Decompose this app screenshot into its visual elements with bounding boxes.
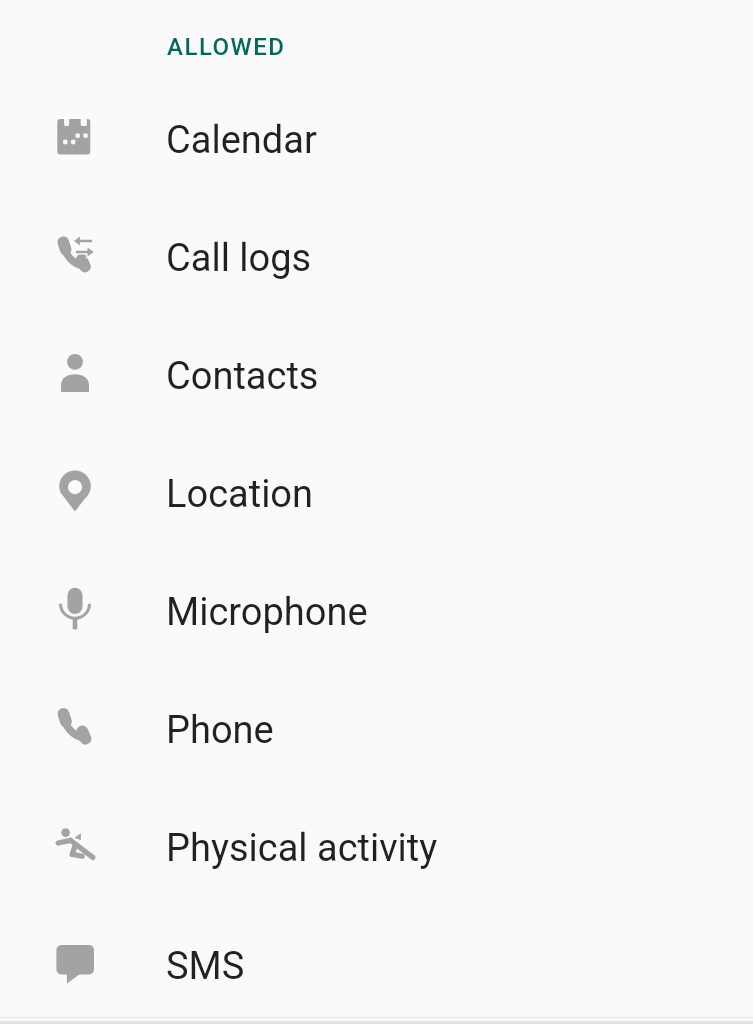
button[interactable]: Calendar: [0, 81, 753, 199]
staticText: Location: [166, 472, 314, 517]
button[interactable]: Location: [0, 435, 753, 553]
staticText: Phone: [166, 708, 274, 753]
button[interactable]: Microphone: [0, 553, 753, 671]
button[interactable]: Physical activity: [0, 789, 753, 907]
staticText: ALLOWED: [167, 33, 286, 61]
staticText: Contacts: [166, 354, 319, 399]
button[interactable]: SMS: [0, 907, 753, 1024]
button[interactable]: Phone: [0, 671, 753, 789]
staticText: Microphone: [166, 590, 368, 635]
staticText: Call logs: [166, 236, 312, 281]
button[interactable]: Contacts: [0, 317, 753, 435]
staticText: Physical activity: [166, 826, 438, 871]
staticText: SMS: [166, 944, 245, 989]
button[interactable]: Call logs: [0, 199, 753, 317]
staticText: Calendar: [166, 118, 317, 163]
